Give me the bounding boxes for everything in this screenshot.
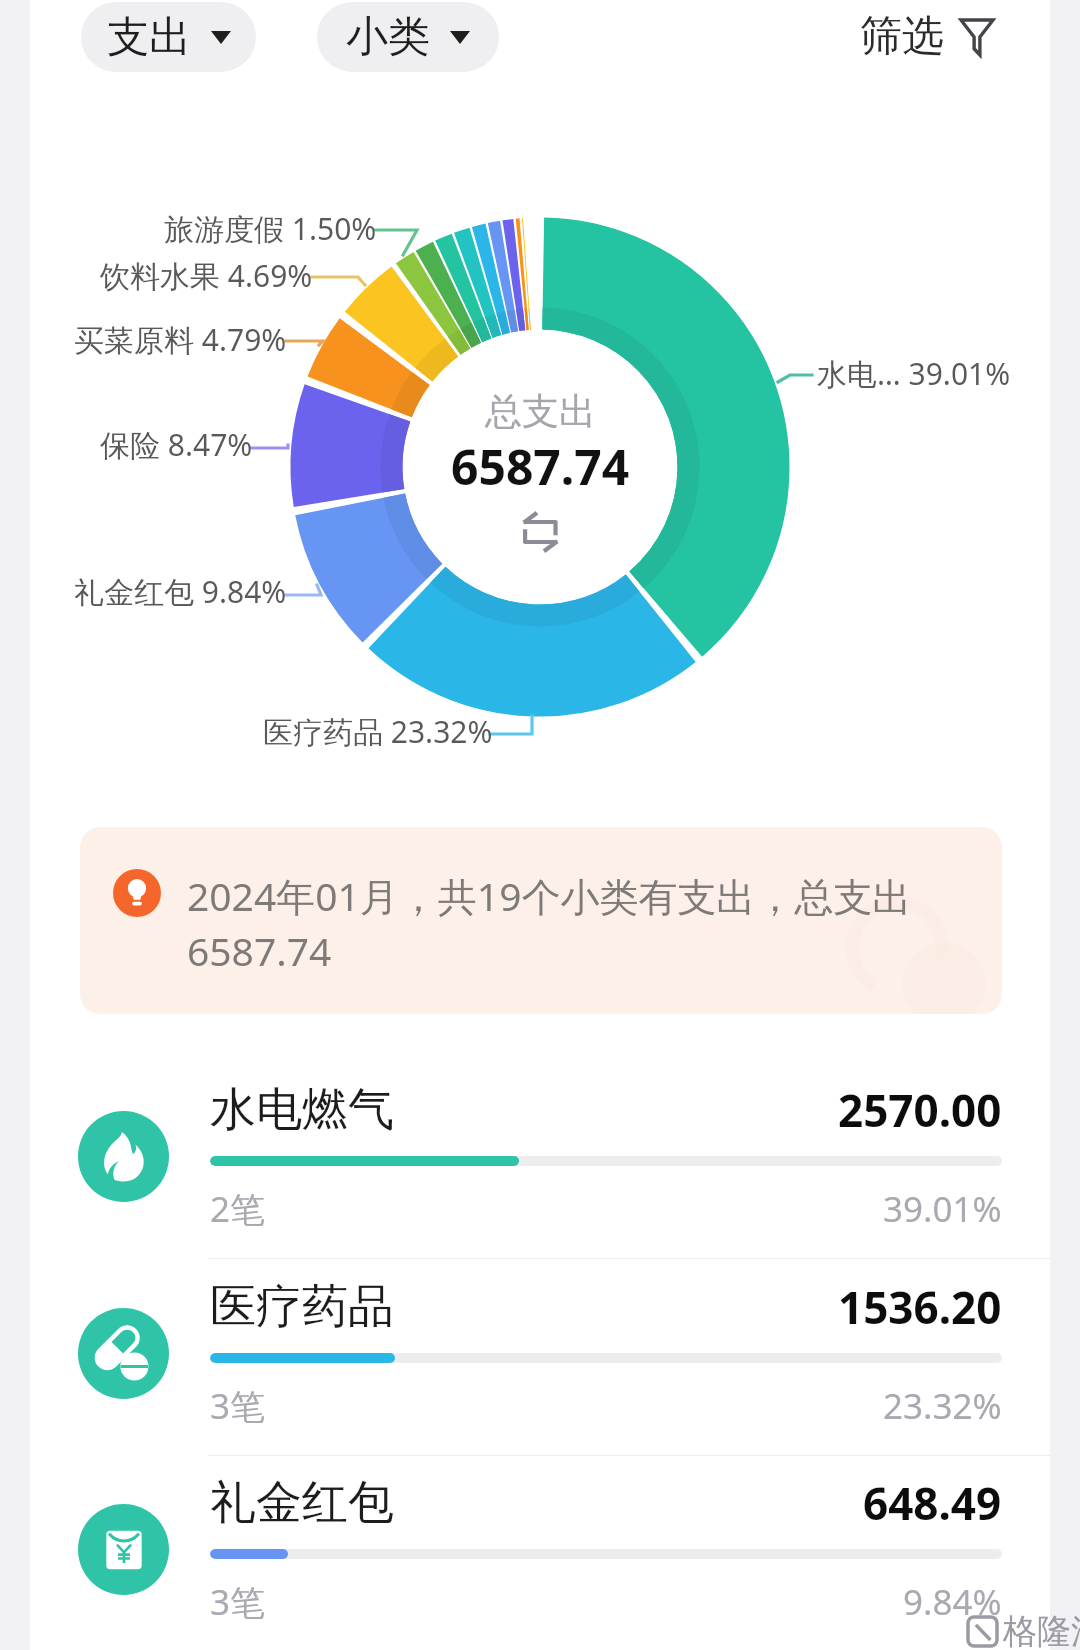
staticText: 格隆汇 xyxy=(1003,1610,1080,1650)
staticText: 648.49 xyxy=(863,1473,1002,1533)
staticText: 水电… 39.01% xyxy=(817,353,1011,394)
button[interactable]: 礼金红包 xyxy=(30,1456,1050,1650)
staticText: 保险 8.47% xyxy=(100,424,253,465)
staticText: 支出 xyxy=(107,11,191,64)
staticText: 39.01% xyxy=(883,1185,1002,1233)
button[interactable]: 支出 xyxy=(81,2,256,72)
staticText: 礼金红包 9.84% xyxy=(74,571,287,612)
staticText: 2笔 xyxy=(210,1185,266,1233)
other: Watermark xyxy=(966,1615,999,1648)
staticText: 小类 xyxy=(346,11,430,64)
staticText: 6587.74 xyxy=(451,434,630,499)
button[interactable]: 小类 xyxy=(317,2,499,72)
staticText: 9.84% xyxy=(903,1578,1002,1626)
staticText: 旅游度假 1.50% xyxy=(164,208,377,249)
staticText: 2570.00 xyxy=(838,1080,1002,1140)
staticText: 23.32% xyxy=(883,1382,1002,1430)
button[interactable]: 筛选 xyxy=(854,0,1001,73)
button[interactable]: 水电燃气 xyxy=(30,1062,1050,1258)
staticText: 2024年01月，共19个小类有支出，总支出6587.74 xyxy=(187,869,927,977)
staticText: 礼金红包 xyxy=(210,1474,394,1532)
staticText: 买菜原料 4.79% xyxy=(74,319,287,360)
staticText: 3笔 xyxy=(210,1382,266,1430)
staticText: 3笔 xyxy=(210,1578,266,1626)
button[interactable]: Switch chart type xyxy=(516,510,564,554)
staticText: 总支出 xyxy=(485,388,596,435)
staticText: 1536.20 xyxy=(838,1277,1002,1337)
staticText: 水电燃气 xyxy=(210,1081,394,1139)
staticText: 饮料水果 4.69% xyxy=(100,255,313,296)
staticText: 医疗药品 xyxy=(210,1278,394,1336)
staticText: 筛选 xyxy=(860,10,944,63)
button[interactable]: 医疗药品 xyxy=(30,1259,1050,1455)
staticText: 医疗药品 23.32% xyxy=(263,711,493,752)
